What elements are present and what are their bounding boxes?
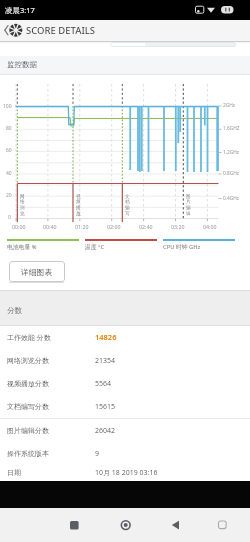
button[interactable] bbox=[114, 517, 138, 541]
staticText: 电池电量 % bbox=[7, 243, 37, 251]
button[interactable] bbox=[164, 517, 188, 541]
staticText: 写 bbox=[125, 211, 130, 217]
staticText: 频 bbox=[76, 199, 81, 205]
staticText: 编 bbox=[125, 205, 130, 211]
staticText: 00:40 bbox=[43, 223, 57, 230]
staticText: 凌晨3:17 bbox=[5, 5, 35, 15]
staticText: 14826 bbox=[95, 332, 117, 342]
staticText: 0 bbox=[8, 214, 11, 221]
button[interactable]: 网络浏览分数 bbox=[0, 349, 250, 372]
button[interactable]: 详细图表 bbox=[9, 261, 65, 282]
staticText: 9 bbox=[95, 449, 100, 459]
staticText: 26042 bbox=[95, 426, 116, 436]
staticText: 2GHz bbox=[223, 102, 236, 109]
staticText: 0.8GHz bbox=[223, 170, 240, 177]
staticText: 网络浏览分数 bbox=[7, 356, 49, 365]
staticText: 21354 bbox=[95, 356, 116, 366]
staticText: CPU 时钟 GHz bbox=[163, 243, 201, 251]
staticText: 03:20 bbox=[171, 223, 185, 230]
staticText: 文档编写分数 bbox=[7, 402, 49, 411]
staticText: 操作系统版本 bbox=[7, 449, 49, 458]
button[interactable]: 操作系统版本 bbox=[0, 442, 250, 465]
staticText: 监控数据 bbox=[7, 60, 37, 69]
staticText: 网 bbox=[20, 194, 25, 200]
button[interactable] bbox=[210, 517, 234, 541]
staticText: 1.2GHz bbox=[223, 149, 240, 156]
staticText: 分数 bbox=[7, 306, 22, 315]
staticText: 日期 bbox=[7, 468, 21, 477]
staticText: 20 bbox=[6, 192, 12, 199]
staticText: 工作效能 分数 bbox=[7, 333, 51, 343]
staticText: 图 bbox=[186, 194, 191, 200]
staticText: 15615 bbox=[95, 402, 116, 412]
staticText: 1.6GHZ bbox=[223, 125, 240, 132]
staticText: 02:00 bbox=[107, 223, 121, 230]
button[interactable] bbox=[62, 517, 86, 541]
staticText: 图片编辑分数 bbox=[7, 426, 49, 435]
staticText: 辑 bbox=[186, 211, 191, 217]
staticText: 100 bbox=[3, 103, 12, 110]
staticText: 温度 °C bbox=[85, 243, 105, 251]
staticText: 视频播放分数 bbox=[7, 379, 49, 388]
staticText: 浏 bbox=[20, 205, 25, 211]
staticText: 60 bbox=[6, 147, 12, 154]
staticText: 40 bbox=[6, 170, 12, 177]
staticText: 0.4GHz bbox=[223, 195, 240, 202]
button[interactable] bbox=[0, 20, 24, 42]
staticText: SCORE DETAILS bbox=[26, 24, 96, 37]
staticText: 片 bbox=[186, 199, 191, 205]
button[interactable]: 文档编写分数 bbox=[0, 395, 250, 418]
staticText: 览 bbox=[20, 211, 25, 217]
staticText: 00:00 bbox=[12, 223, 26, 230]
staticText: 档 bbox=[125, 199, 130, 205]
button[interactable]: 工作效能 分数 bbox=[0, 326, 250, 349]
staticText: 详细图表 bbox=[21, 267, 53, 277]
staticText: 播 bbox=[76, 205, 81, 211]
staticText: 01:20 bbox=[75, 223, 89, 230]
button[interactable]: 日期 bbox=[0, 465, 250, 481]
staticText: 10月 18 2019 03:16 bbox=[95, 468, 158, 478]
staticText: 04:00 bbox=[203, 223, 217, 230]
staticText: 放 bbox=[76, 211, 81, 217]
button[interactable]: 图片编辑分数 bbox=[0, 419, 250, 442]
staticText: 02:40 bbox=[139, 223, 153, 230]
staticText: 视 bbox=[76, 194, 81, 200]
staticText: 编 bbox=[186, 205, 191, 211]
staticText: 5564 bbox=[95, 379, 112, 389]
staticText: 络 bbox=[20, 199, 25, 205]
button[interactable]: 视频播放分数 bbox=[0, 372, 250, 395]
staticText: 文 bbox=[125, 194, 130, 200]
staticText: 80 bbox=[6, 125, 12, 132]
